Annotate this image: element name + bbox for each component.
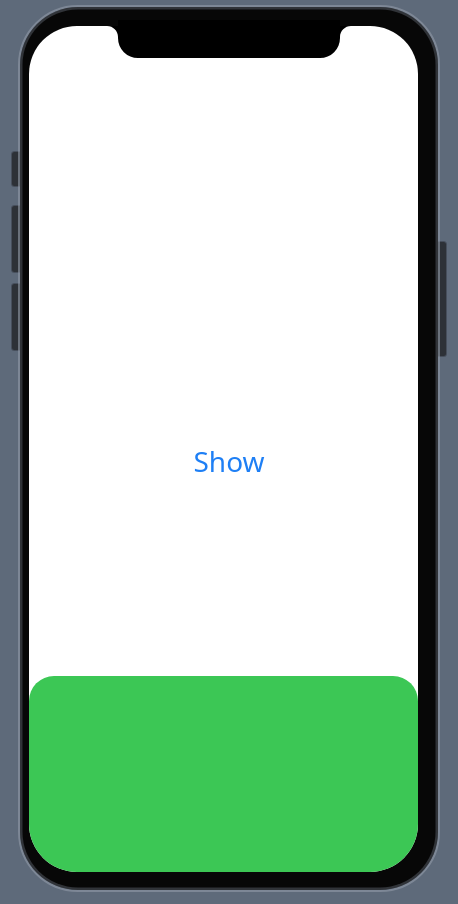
staticText: Show [193,442,265,480]
button[interactable]: Show [159,439,299,483]
button[interactable]: Bottom sheet [29,676,418,872]
